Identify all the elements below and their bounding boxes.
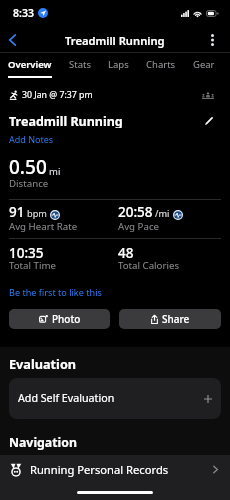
button[interactable]: Charts: [146, 53, 176, 75]
button[interactable]: Gear: [193, 53, 215, 75]
button[interactable]: Be the first to like this: [9, 286, 102, 298]
staticText: Add Notes: [9, 133, 54, 145]
staticText: 8:33: [13, 6, 34, 20]
button[interactable]: Photo: [9, 309, 110, 329]
staticText: Stats: [69, 58, 91, 71]
button[interactable]: Stats: [69, 53, 91, 75]
staticText: Add Self Evaluation: [18, 391, 115, 406]
staticText: Total Calories: [118, 259, 180, 272]
staticText: Avg Heart Rate: [9, 220, 78, 233]
staticText: Navigation: [9, 434, 77, 451]
staticText: 91: [9, 203, 25, 221]
staticText: Gear: [193, 58, 215, 71]
staticText: 48: [118, 244, 134, 262]
staticText: Treadmill Running: [65, 33, 165, 48]
button[interactable]: Laps: [108, 53, 129, 75]
button[interactable]: Overview: [8, 53, 52, 75]
button[interactable]: Add Self Evaluation: [9, 378, 221, 419]
staticText: 0.50: [9, 154, 47, 180]
button[interactable]: Share: [119, 309, 221, 329]
staticText: mi: [49, 165, 61, 178]
button[interactable]: Add Notes: [9, 133, 54, 145]
staticText: 20:58: [118, 203, 153, 221]
staticText: /mi: [155, 207, 170, 220]
staticText: Share: [162, 312, 190, 326]
staticText: Total Time: [9, 259, 56, 272]
staticText: 10:35: [9, 244, 44, 262]
staticText: Avg Pace: [118, 220, 159, 233]
staticText: Evaluation: [9, 355, 77, 372]
button[interactable]: More options: [195, 26, 230, 53]
staticText: Be the first to like this: [9, 286, 102, 298]
staticText: bpm: [27, 207, 47, 220]
button[interactable]: Back: [0, 26, 28, 53]
staticText: Distance: [9, 177, 49, 190]
staticText: Overview: [8, 58, 52, 71]
staticText: 30 Jan @ 7:37 pm: [22, 89, 93, 101]
staticText: Running Personal Records: [30, 462, 169, 477]
staticText: Charts: [146, 58, 176, 71]
button[interactable]: Edit: [201, 113, 217, 128]
staticText: Photo: [52, 312, 81, 326]
staticText: Laps: [108, 58, 129, 71]
button[interactable]: Running Personal Records: [0, 455, 230, 484]
staticText: Treadmill Running: [9, 113, 123, 128]
button[interactable]: Participants: [200, 87, 216, 103]
